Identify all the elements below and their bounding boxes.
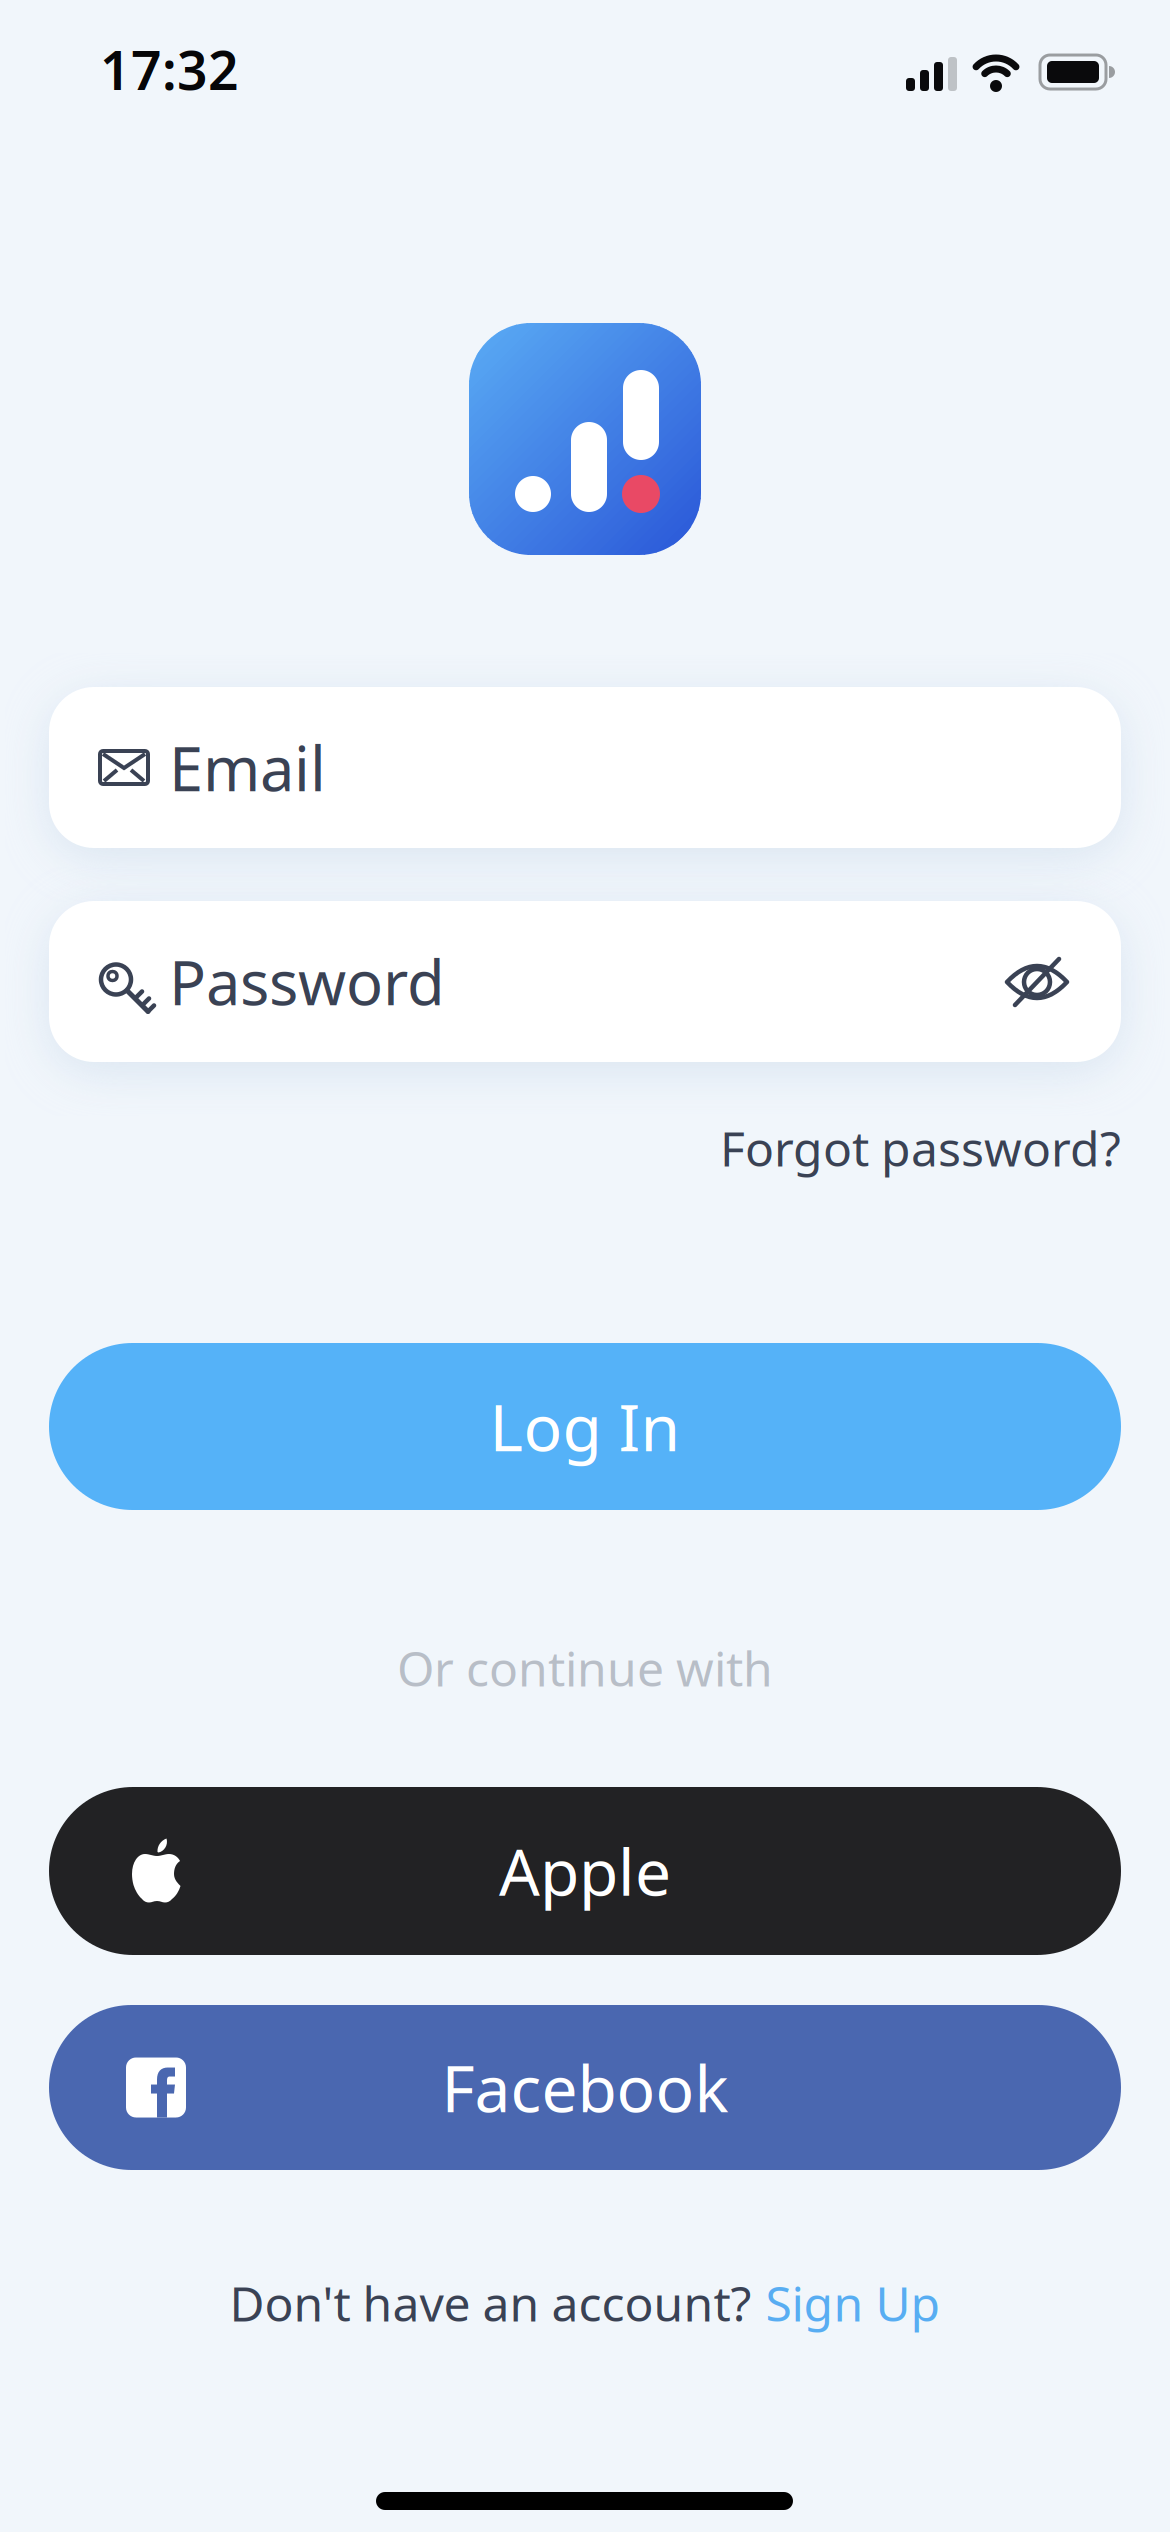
staticText: Facebook: [441, 2045, 728, 2130]
button[interactable]: Show password: [993, 950, 1081, 1014]
button[interactable]: Facebook: [49, 2005, 1121, 2170]
button[interactable]: Log In: [49, 1343, 1121, 1510]
staticText: Or continue with: [397, 1636, 773, 1700]
staticText: Password: [169, 941, 445, 1022]
button[interactable]: Password: [49, 901, 1121, 1062]
staticText: Don't have an account?: [229, 2271, 751, 2335]
button[interactable]: Email: [49, 687, 1121, 848]
staticText: Sign Up: [765, 2271, 940, 2335]
staticText: 17:32: [100, 34, 239, 105]
button[interactable]: Forgot password?: [720, 1116, 1121, 1180]
button[interactable]: Sign Up: [765, 2271, 940, 2335]
button[interactable]: Apple: [49, 1787, 1121, 1955]
staticText: Forgot password?: [720, 1116, 1121, 1180]
staticText: Apple: [499, 1828, 671, 1913]
staticText: Log In: [489, 1384, 680, 1469]
staticText: Email: [169, 727, 326, 808]
